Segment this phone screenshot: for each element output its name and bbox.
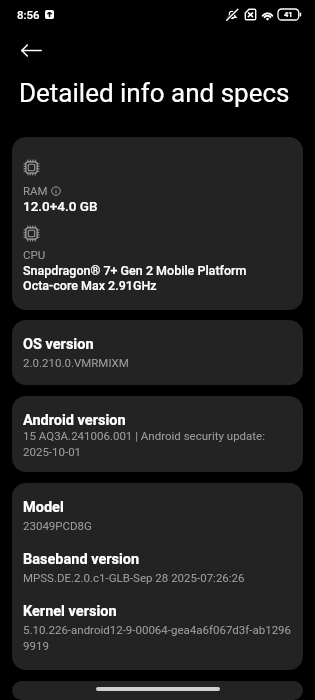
staticText: 5.10.226-android12-9-00064-gea4a6f067d3f… [23, 623, 292, 652]
staticText: Kernel version [23, 603, 117, 620]
staticText: Android version [23, 412, 126, 429]
staticText: 12.0+4.0 GB [23, 198, 98, 214]
button[interactable]: Model [12, 483, 303, 670]
staticText: 2.0.210.0.VMRMIXM [23, 356, 129, 369]
staticText: Detailed info and specs [19, 78, 290, 108]
staticText: 8:56 [17, 8, 40, 21]
staticText: MPSS.DE.2.0.c1-GLB-Sep 28 2025-07:26:26 [23, 571, 245, 584]
staticText: RAM [23, 184, 48, 197]
button[interactable] [12, 681, 303, 700]
staticText: 41 [284, 10, 293, 19]
staticText: 23049PCD8G [23, 519, 92, 532]
staticText: Baseband version [23, 551, 140, 568]
button[interactable]: Back [10, 29, 52, 71]
staticText: 15 AQ3A.241006.001 | Android security up… [23, 429, 265, 458]
button[interactable]: OS version [12, 320, 303, 385]
staticText: OS version [23, 336, 94, 353]
staticText: Model [23, 499, 64, 516]
button[interactable]: RAM [12, 137, 303, 310]
button[interactable]: Android version [12, 396, 303, 472]
staticText: Snapdragon® 7+ Gen 2 Mobile Platform [23, 263, 247, 278]
staticText: CPU [23, 248, 46, 261]
staticText: Octa-core Max 2.91GHz [23, 278, 157, 293]
